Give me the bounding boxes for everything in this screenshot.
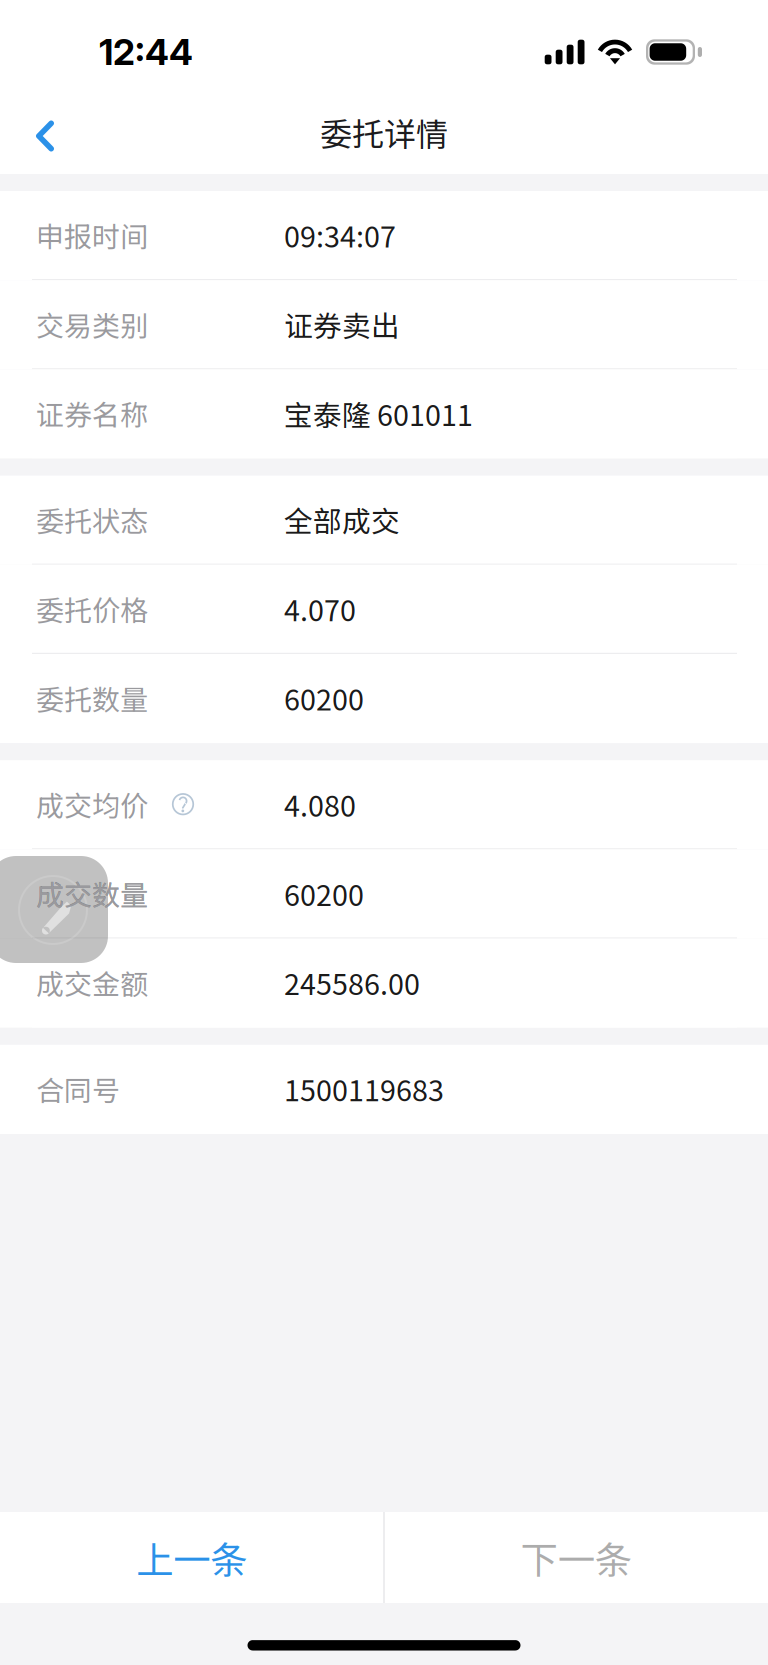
- staticText: 申报时间: [36, 215, 148, 255]
- staticText: 委托数量: [36, 678, 148, 718]
- staticText: 宝泰隆 601011: [284, 393, 473, 434]
- staticText: 委托状态: [36, 499, 148, 540]
- button[interactable]: 上一条: [0, 1512, 383, 1603]
- staticText: 成交金额: [36, 962, 148, 1003]
- button[interactable]: Edit: [0, 856, 108, 963]
- staticText: 上一条: [136, 1530, 247, 1585]
- staticText: 12:44: [99, 30, 193, 74]
- staticText: 60200: [284, 677, 364, 719]
- staticText: 合同号: [36, 1068, 120, 1109]
- staticText: 下一条: [521, 1530, 632, 1585]
- staticText: 成交数量: [36, 873, 148, 914]
- staticText: 4.070: [284, 588, 356, 629]
- staticText: 证券卖出: [284, 303, 400, 345]
- staticText: 全部成交: [284, 499, 400, 540]
- staticText: 成交数量: [36, 873, 148, 914]
- staticText: 成交均价: [36, 784, 148, 824]
- staticText: 交易类别: [36, 304, 148, 344]
- staticText: 证券名称: [36, 393, 148, 434]
- button[interactable]: Back: [0, 90, 84, 173]
- staticText: 委托价格: [36, 588, 148, 629]
- staticText: 委托详情: [320, 109, 448, 155]
- staticText: 1500119683: [284, 1068, 444, 1109]
- button[interactable]: 下一条: [385, 1512, 768, 1603]
- staticText: 245586.00: [284, 962, 420, 1003]
- staticText: 60200: [284, 873, 364, 914]
- staticText: 4.080: [284, 783, 356, 825]
- staticText: 09:34:07: [284, 214, 396, 256]
